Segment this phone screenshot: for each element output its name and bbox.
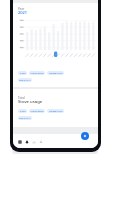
- button[interactable]: 5 days: [18, 71, 27, 75]
- staticText: Year: [18, 7, 25, 11]
- button[interactable]: 2021: [18, 10, 28, 15]
- staticText: 5 days: [20, 72, 26, 75]
- staticText: Total: [18, 96, 25, 100]
- button[interactable]: History: [23, 135, 30, 148]
- staticText: 1 person ahead: [30, 72, 44, 75]
- staticText: 1 person ahead: [30, 110, 44, 113]
- button[interactable]: Stove usage: [18, 99, 43, 105]
- staticText: Average of 4:05: [49, 110, 63, 113]
- staticText: 5 days: [20, 110, 26, 113]
- button[interactable]: Add entry: [81, 132, 89, 140]
- button[interactable]: 1 person ahead: [29, 109, 45, 113]
- button[interactable]: Total of 12:11: [18, 78, 32, 82]
- button[interactable]: Average of 4:05: [47, 71, 64, 75]
- button[interactable]: Stats: [30, 135, 37, 148]
- button[interactable]: Profile: [37, 135, 44, 148]
- staticText: Average of 4:05: [49, 72, 63, 75]
- button[interactable]: Total of 12:11: [18, 116, 32, 120]
- button[interactable]: Year: [18, 7, 25, 11]
- button[interactable]: Average of 4:05: [47, 109, 64, 113]
- button[interactable]: 1 person ahead: [29, 71, 45, 75]
- staticText: 2021: [18, 10, 28, 15]
- button[interactable]: Home: [16, 135, 23, 148]
- staticText: Total of 12:11: [19, 117, 31, 120]
- staticText: Total of 12:11: [19, 79, 31, 82]
- staticText: Stove usage: [18, 99, 43, 105]
- button[interactable]: 5 days: [18, 109, 27, 113]
- button[interactable]: Total: [18, 96, 25, 100]
